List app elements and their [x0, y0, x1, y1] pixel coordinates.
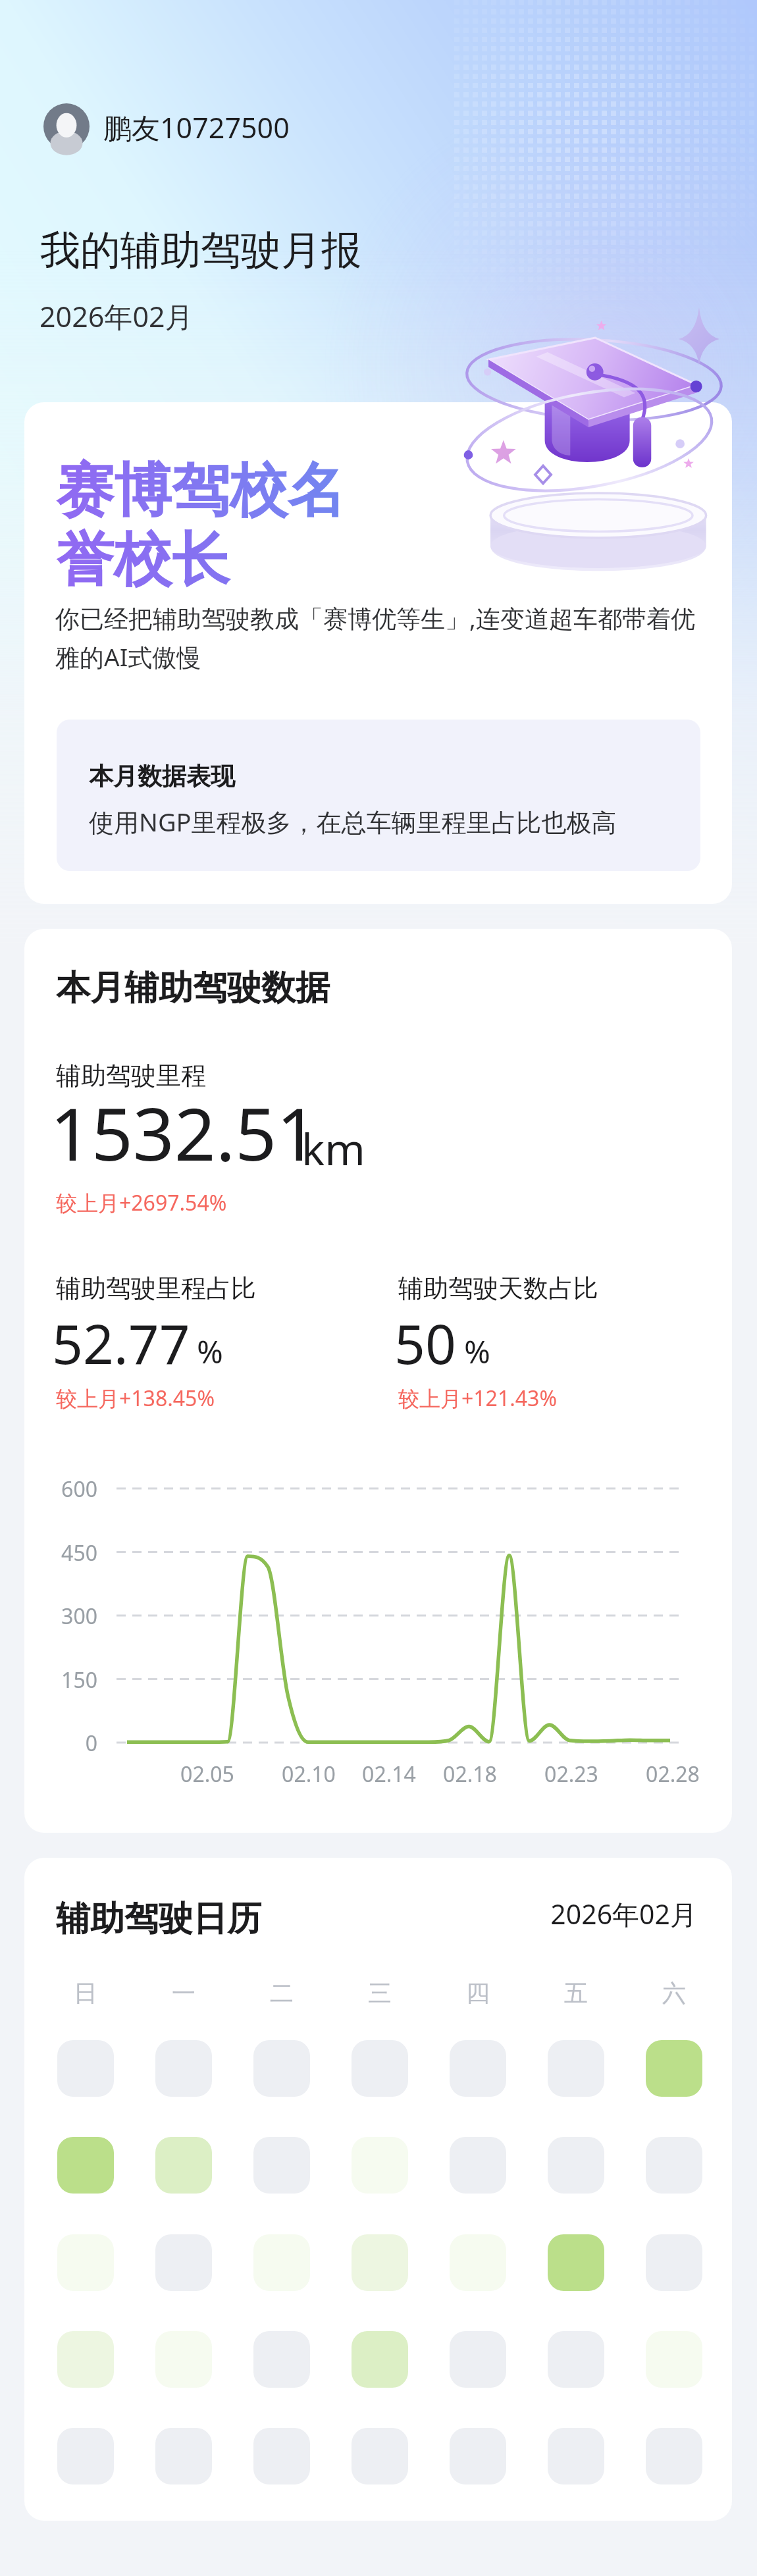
staticText: 六	[641, 1978, 707, 2008]
staticText: 誉校长	[56, 523, 230, 596]
staticText: 辅助驾驶日历	[56, 1897, 261, 1941]
staticText: 02.18	[431, 1760, 509, 1789]
staticText: 0	[51, 1729, 97, 1758]
staticText: 2026年02月	[39, 297, 194, 336]
staticText: 二	[249, 1978, 315, 2008]
staticText: 我的辅助驾驶月报	[40, 225, 361, 276]
button[interactable]	[450, 2234, 506, 2291]
button[interactable]	[155, 2428, 212, 2484]
staticText: 鹏友10727500	[103, 108, 290, 147]
button[interactable]	[450, 2040, 506, 2097]
staticText: 五	[543, 1978, 609, 2008]
staticText: 1532.51	[50, 1083, 318, 1182]
staticText: 600	[51, 1475, 97, 1504]
staticText: 较上月+2697.54%	[56, 1188, 227, 1217]
staticText: 日	[53, 1978, 118, 2008]
button[interactable]	[155, 2137, 212, 2194]
staticText: 300	[51, 1602, 97, 1631]
staticText: km	[301, 1118, 365, 1178]
button[interactable]	[57, 2137, 114, 2194]
button[interactable]	[155, 2331, 212, 2388]
staticText: 三	[347, 1978, 413, 2008]
button[interactable]	[253, 2331, 310, 2388]
button[interactable]	[646, 2331, 702, 2388]
button[interactable]	[352, 2428, 408, 2484]
staticText: 52.77	[52, 1306, 190, 1380]
button[interactable]	[646, 2137, 702, 2194]
button[interactable]: 赛博驾校名	[24, 402, 732, 904]
staticText: 02.14	[350, 1760, 429, 1789]
staticText: %	[464, 1330, 490, 1373]
button[interactable]	[253, 2234, 310, 2291]
button[interactable]: Profile avatar	[43, 103, 276, 149]
staticText: 辅助驾驶里程	[56, 1060, 206, 1091]
staticText: 使用NGP里程极多，在总车辆里程里占比也极高	[89, 804, 617, 839]
staticText: 本月辅助驾驶数据	[56, 966, 330, 1010]
staticText: 150	[51, 1666, 97, 1695]
button[interactable]	[450, 2331, 506, 2388]
staticText: 较上月+138.45%	[56, 1384, 215, 1413]
button[interactable]	[253, 2137, 310, 2194]
staticText: 赛博驾校名	[56, 454, 346, 527]
button[interactable]	[646, 2234, 702, 2291]
other: Profile avatar	[43, 103, 90, 149]
button[interactable]	[155, 2040, 212, 2097]
button[interactable]	[450, 2137, 506, 2194]
staticText: 辅助驾驶里程占比	[56, 1273, 256, 1304]
button[interactable]	[57, 2234, 114, 2291]
staticText: 辅助驾驶天数占比	[398, 1273, 598, 1304]
button[interactable]	[548, 2331, 604, 2388]
staticText: 50	[394, 1306, 456, 1380]
button[interactable]	[57, 2331, 114, 2388]
button[interactable]	[155, 2234, 212, 2291]
staticText: 四	[445, 1978, 511, 2008]
staticText: 较上月+121.43%	[398, 1384, 557, 1413]
staticText: 02.28	[633, 1760, 712, 1789]
button[interactable]	[253, 2040, 310, 2097]
button[interactable]	[450, 2428, 506, 2484]
button[interactable]	[548, 2428, 604, 2484]
button[interactable]	[253, 2428, 310, 2484]
staticText: 2026年02月	[544, 1895, 697, 1932]
button[interactable]	[548, 2234, 604, 2291]
button[interactable]	[548, 2137, 604, 2194]
button[interactable]	[646, 2040, 702, 2097]
staticText: 你已经把辅助驾驶教成「赛博优等生」,连变道超车都带着优雅的AI式傲慢	[55, 601, 707, 673]
button[interactable]: 辅助驾驶日历	[24, 1858, 732, 2521]
button[interactable]	[548, 2040, 604, 2097]
button[interactable]	[352, 2331, 408, 2388]
staticText: 02.10	[269, 1760, 348, 1789]
button[interactable]	[646, 2428, 702, 2484]
staticText: 02.05	[168, 1760, 247, 1789]
button[interactable]	[352, 2234, 408, 2291]
staticText: 450	[51, 1538, 97, 1567]
button[interactable]	[57, 2040, 114, 2097]
staticText: %	[197, 1330, 223, 1373]
button[interactable]	[352, 2137, 408, 2194]
button[interactable]	[57, 2428, 114, 2484]
button[interactable]	[352, 2040, 408, 2097]
staticText: 02.23	[532, 1760, 611, 1789]
staticText: 一	[151, 1978, 217, 2008]
button[interactable]: 本月辅助驾驶数据	[24, 929, 732, 1833]
staticText: 本月数据表现	[89, 761, 235, 792]
